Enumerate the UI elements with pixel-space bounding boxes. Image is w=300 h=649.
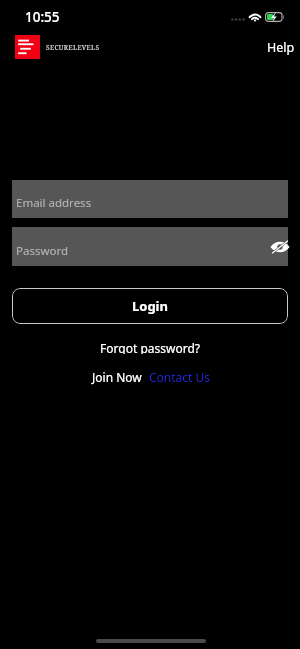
staticText: Password xyxy=(16,243,69,259)
button[interactable]: Forgot password? xyxy=(94,338,207,356)
staticText: Contact Us xyxy=(149,369,211,385)
button[interactable]: Show password xyxy=(267,234,293,260)
staticText: 10:55 xyxy=(25,8,60,26)
staticText: Email address xyxy=(16,195,92,211)
button[interactable]: Password xyxy=(12,227,288,266)
button[interactable]: Help xyxy=(263,36,299,59)
button[interactable]: Contact Us xyxy=(149,369,211,385)
staticText: Join Now xyxy=(92,369,142,385)
button[interactable]: Email address xyxy=(12,180,288,218)
staticText: SECURELEVELS xyxy=(46,43,100,52)
staticText: Forgot password? xyxy=(100,340,201,354)
button[interactable]: Login xyxy=(12,288,288,324)
staticText: Help xyxy=(267,39,295,56)
staticText: Login xyxy=(132,297,168,315)
button[interactable]: SecureLevels xyxy=(15,35,100,59)
